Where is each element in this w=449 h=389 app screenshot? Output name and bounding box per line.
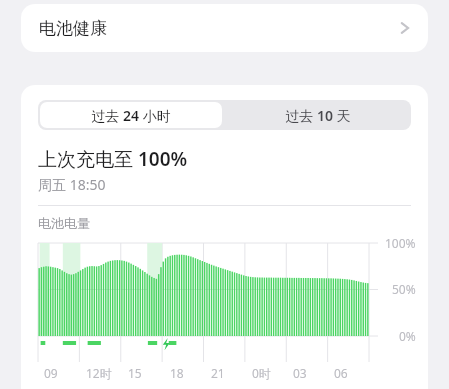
staticText: 过去 10 天 (285, 106, 351, 125)
button[interactable]: 电池健康 (21, 4, 428, 52)
staticText: 0时 (252, 365, 271, 381)
staticText: 03 (293, 365, 307, 381)
staticText: 06 (334, 365, 348, 381)
button[interactable]: 过去 24 小时 (40, 102, 222, 128)
staticText: 电池健康 (39, 18, 107, 39)
staticText: 过去 24 小时 (91, 106, 171, 125)
staticText: 18 (170, 365, 184, 381)
button[interactable]: 过去 10 天 (224, 100, 411, 130)
staticText: 100% (385, 235, 416, 251)
staticText: 上次充电至 100% (38, 146, 188, 172)
staticText: 12时 (86, 365, 112, 381)
staticText: 50% (392, 281, 416, 297)
other: 电池健康详情 (400, 20, 410, 36)
staticText: 15 (128, 365, 142, 381)
staticText: 0% (399, 328, 416, 344)
staticText: 周五 18:50 (38, 175, 106, 194)
staticText: 电池电量 (38, 215, 90, 231)
staticText: 09 (44, 365, 58, 381)
staticText: 21 (211, 365, 225, 381)
